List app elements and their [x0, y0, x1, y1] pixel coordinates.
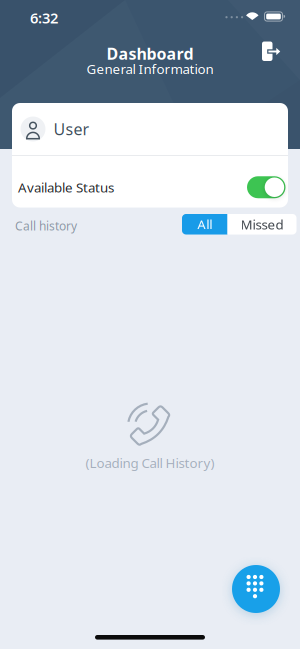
button[interactable]: All	[182, 214, 227, 234]
staticText: Missed	[240, 215, 283, 233]
staticText: General Information	[86, 60, 213, 78]
button[interactable]: Log out	[259, 40, 281, 62]
staticText: Call history	[15, 218, 77, 234]
staticText: All	[197, 215, 212, 233]
staticText: Dashboard	[106, 43, 193, 64]
staticText: Available Status	[18, 178, 114, 196]
button[interactable]: User	[12, 103, 288, 155]
button[interactable]: Missed	[227, 214, 296, 234]
staticText: 6:32	[30, 8, 58, 27]
button[interactable]: Open dial pad	[232, 565, 280, 613]
staticText: (Loading Call History)	[85, 454, 214, 472]
button[interactable]: Available Status	[247, 176, 285, 198]
staticText: User	[53, 118, 89, 140]
